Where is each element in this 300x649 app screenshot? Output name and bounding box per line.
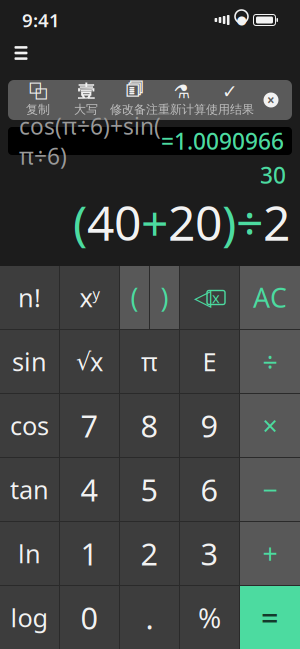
- staticText: x: [212, 288, 220, 307]
- button[interactable]: 关闭: [254, 80, 288, 120]
- button[interactable]: (: [120, 266, 149, 329]
- button[interactable]: Menu: [4, 36, 38, 70]
- button[interactable]: ÷: [240, 330, 300, 393]
- staticText: ): [160, 280, 168, 315]
- staticText: E: [202, 345, 216, 378]
- button[interactable]: x: [60, 266, 119, 329]
- button[interactable]: AC: [240, 266, 300, 329]
- button[interactable]: π: [120, 330, 179, 393]
- staticText: 4: [80, 469, 98, 510]
- button[interactable]: 🗊: [110, 83, 158, 117]
- staticText: cos: [10, 409, 49, 442]
- button[interactable]: ×: [240, 394, 300, 457]
- button[interactable]: cos: [0, 394, 59, 457]
- button[interactable]: 3: [180, 522, 239, 585]
- button[interactable]: 4: [60, 458, 119, 521]
- staticText: AC: [253, 280, 287, 315]
- button[interactable]: 9: [180, 394, 239, 457]
- staticText: ÷: [236, 190, 263, 254]
- staticText: ×: [262, 408, 277, 443]
- staticText: 2: [263, 190, 290, 254]
- button[interactable]: n!: [0, 266, 59, 329]
- staticText: ⧉: [28, 80, 48, 103]
- button[interactable]: −: [240, 458, 300, 521]
- button[interactable]: %: [180, 586, 239, 649]
- staticText: y: [92, 284, 99, 303]
- staticText: 20: [168, 190, 222, 254]
- staticText: 大写: [74, 102, 98, 117]
- staticText: 🗊: [125, 76, 142, 107]
- staticText: 1: [80, 533, 98, 574]
- staticText: −: [262, 472, 277, 507]
- staticText: ✓: [222, 81, 238, 102]
- button[interactable]: log: [0, 586, 59, 649]
- button[interactable]: E: [180, 330, 239, 393]
- staticText: n!: [18, 281, 41, 314]
- button[interactable]: tan: [0, 458, 59, 521]
- button[interactable]: .: [120, 586, 179, 649]
- staticText: x: [79, 281, 92, 314]
- staticText: 8: [140, 405, 158, 446]
- staticText: 修改备注: [110, 102, 158, 117]
- button[interactable]: 6: [180, 458, 239, 521]
- staticText: sin: [12, 345, 47, 378]
- staticText: 2: [140, 533, 158, 574]
- button[interactable]: 删除: [180, 266, 239, 329]
- button[interactable]: ✓: [206, 83, 254, 117]
- staticText: ×: [267, 91, 275, 109]
- staticText: 40: [87, 190, 141, 254]
- staticText: (: [130, 280, 138, 315]
- staticText: +: [141, 190, 168, 254]
- staticText: x: [90, 345, 103, 378]
- button[interactable]: +: [240, 522, 300, 585]
- button[interactable]: =: [240, 586, 300, 649]
- staticText: ●: [236, 13, 246, 27]
- staticText: 壹: [77, 81, 94, 102]
- staticText: π: [141, 345, 158, 378]
- staticText: 5: [140, 469, 158, 510]
- staticText: ⚗: [173, 81, 190, 102]
- staticText: 30: [260, 160, 286, 190]
- button[interactable]: √: [60, 330, 119, 393]
- staticText: ln: [18, 537, 41, 570]
- button[interactable]: ): [150, 266, 179, 329]
- button[interactable]: 8: [120, 394, 179, 457]
- staticText: 6: [200, 469, 218, 510]
- staticText: 使用结果: [206, 102, 254, 117]
- staticText: ÷: [262, 344, 277, 379]
- staticText: (: [73, 190, 87, 254]
- staticText: ◁: [194, 285, 211, 310]
- staticText: log: [10, 601, 48, 634]
- staticText: √: [76, 348, 91, 375]
- staticText: 9: [200, 405, 218, 446]
- staticText: =: [261, 597, 279, 638]
- staticText: =1.0090966: [161, 126, 284, 156]
- button[interactable]: 2: [120, 522, 179, 585]
- button[interactable]: 7: [60, 394, 119, 457]
- staticText: ): [222, 190, 236, 254]
- button[interactable]: sin: [0, 330, 59, 393]
- staticText: .: [145, 597, 153, 638]
- staticText: 9:41: [22, 8, 60, 32]
- button[interactable]: 壹: [62, 83, 110, 117]
- staticText: 复制: [26, 102, 50, 117]
- button[interactable]: ⧉: [14, 83, 62, 117]
- staticText: 重新计算: [158, 102, 206, 117]
- staticText: %: [198, 599, 221, 636]
- staticText: 0: [80, 597, 98, 638]
- button[interactable]: ⚗: [158, 83, 206, 117]
- button[interactable]: ln: [0, 522, 59, 585]
- staticText: 3: [200, 533, 218, 574]
- staticText: tan: [10, 473, 49, 506]
- button[interactable]: 1: [60, 522, 119, 585]
- button[interactable]: 0: [60, 586, 119, 649]
- button[interactable]: 5: [120, 458, 179, 521]
- staticText: cos(π÷6)+sin(π÷6): [19, 111, 161, 171]
- staticText: 7: [80, 405, 98, 446]
- staticText: +: [262, 536, 277, 571]
